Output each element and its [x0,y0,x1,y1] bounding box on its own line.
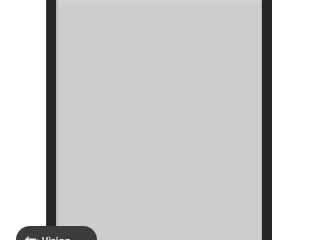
staticText: Vision [42,234,71,240]
button[interactable]: Vision label [16,226,97,240]
other: Vision [24,234,38,240]
